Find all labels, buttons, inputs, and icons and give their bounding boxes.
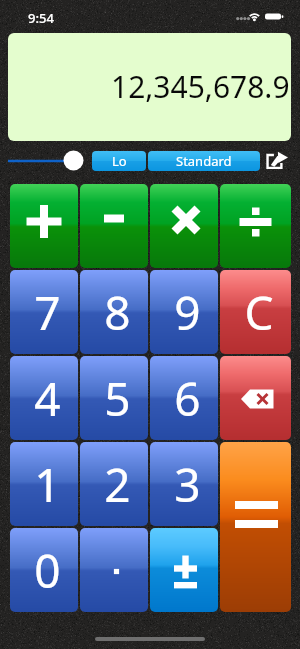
staticText: 3 xyxy=(174,453,201,516)
staticText: Lo xyxy=(112,152,127,170)
button[interactable]: 6 xyxy=(150,356,218,440)
staticText: 7 xyxy=(34,281,61,344)
button[interactable]: Standard xyxy=(148,151,260,171)
staticText: 9:54 xyxy=(28,9,54,27)
staticText: 6 xyxy=(174,367,201,430)
button[interactable]: Multiply xyxy=(150,184,218,268)
button[interactable]: 1 xyxy=(10,442,78,526)
button[interactable]: 2 xyxy=(80,442,148,526)
staticText: 12,345,678.9 xyxy=(111,66,290,107)
staticText: 1 xyxy=(34,453,61,516)
button[interactable]: Plus minus xyxy=(150,528,218,612)
staticText: C xyxy=(244,281,274,344)
button[interactable]: Share xyxy=(262,149,292,171)
button[interactable]: 8 xyxy=(80,270,148,354)
button[interactable]: Minus xyxy=(80,184,148,268)
staticText: 4 xyxy=(34,367,61,430)
button[interactable]: 5 xyxy=(80,356,148,440)
button[interactable]: Decimal point xyxy=(80,528,148,612)
button[interactable]: Divide xyxy=(220,184,291,268)
button[interactable]: C xyxy=(220,270,291,354)
staticText: 2 xyxy=(104,453,131,516)
button[interactable]: 7 xyxy=(10,270,78,354)
button[interactable]: Precision slider xyxy=(2,147,90,173)
staticText: 8 xyxy=(104,281,131,344)
staticText: Standard xyxy=(176,152,232,170)
button[interactable]: Plus xyxy=(10,184,78,268)
button[interactable]: 4 xyxy=(10,356,78,440)
button[interactable]: 3 xyxy=(150,442,218,526)
staticText: 0 xyxy=(34,539,61,602)
staticText: 5 xyxy=(104,367,131,430)
staticText: 9 xyxy=(174,281,201,344)
button[interactable]: Backspace xyxy=(220,356,291,440)
button[interactable]: 9 xyxy=(150,270,218,354)
button[interactable]: Equals xyxy=(220,442,291,612)
button[interactable]: Lo xyxy=(92,151,146,171)
button[interactable]: 0 xyxy=(10,528,78,612)
